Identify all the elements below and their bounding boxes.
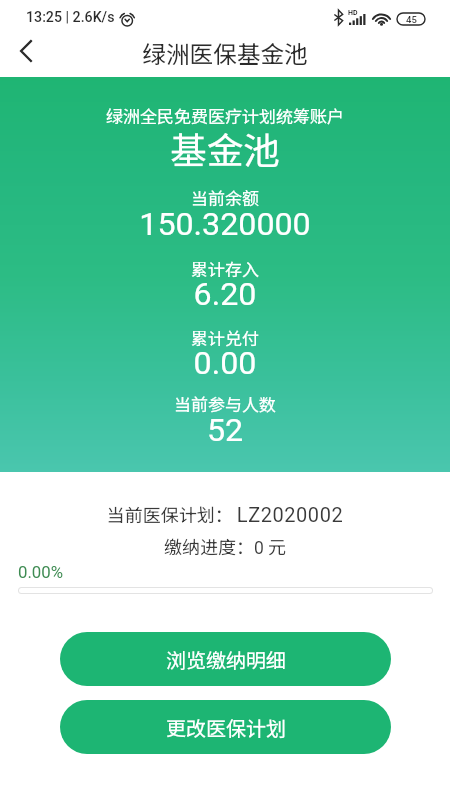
button[interactable]: Back [2, 30, 48, 77]
staticText: 当前余额 [0, 185, 450, 210]
staticText: 当前医保计划： LZ2020002 [0, 501, 450, 527]
staticText: 150.320000 [0, 205, 450, 243]
button[interactable]: 浏览缴纳明细 [60, 632, 391, 686]
staticText: 52 [0, 411, 450, 449]
staticText: 0.00 [0, 344, 450, 382]
staticText: 13:25 | 2.6K/s [26, 9, 115, 26]
staticText: HD [348, 9, 358, 17]
staticText: 更改医保计划 [166, 713, 286, 742]
staticText: 绿洲全民免费医疗计划统筹账户 [0, 103, 450, 128]
staticText: 绿洲医保基金池 [0, 36, 450, 70]
staticText: 累计存入 [0, 256, 450, 281]
staticText: 浏览缴纳明细 [166, 645, 286, 674]
button[interactable]: 更改医保计划 [60, 700, 391, 754]
staticText: 45 [406, 14, 417, 25]
staticText: 累计兑付 [0, 325, 450, 350]
staticText: 0.00% [18, 562, 64, 582]
staticText: 当前参与人数 [0, 391, 450, 416]
staticText: 缴纳进度：0 元 [0, 533, 450, 559]
staticText: 基金池 [0, 122, 450, 175]
staticText: 6.20 [0, 275, 450, 313]
